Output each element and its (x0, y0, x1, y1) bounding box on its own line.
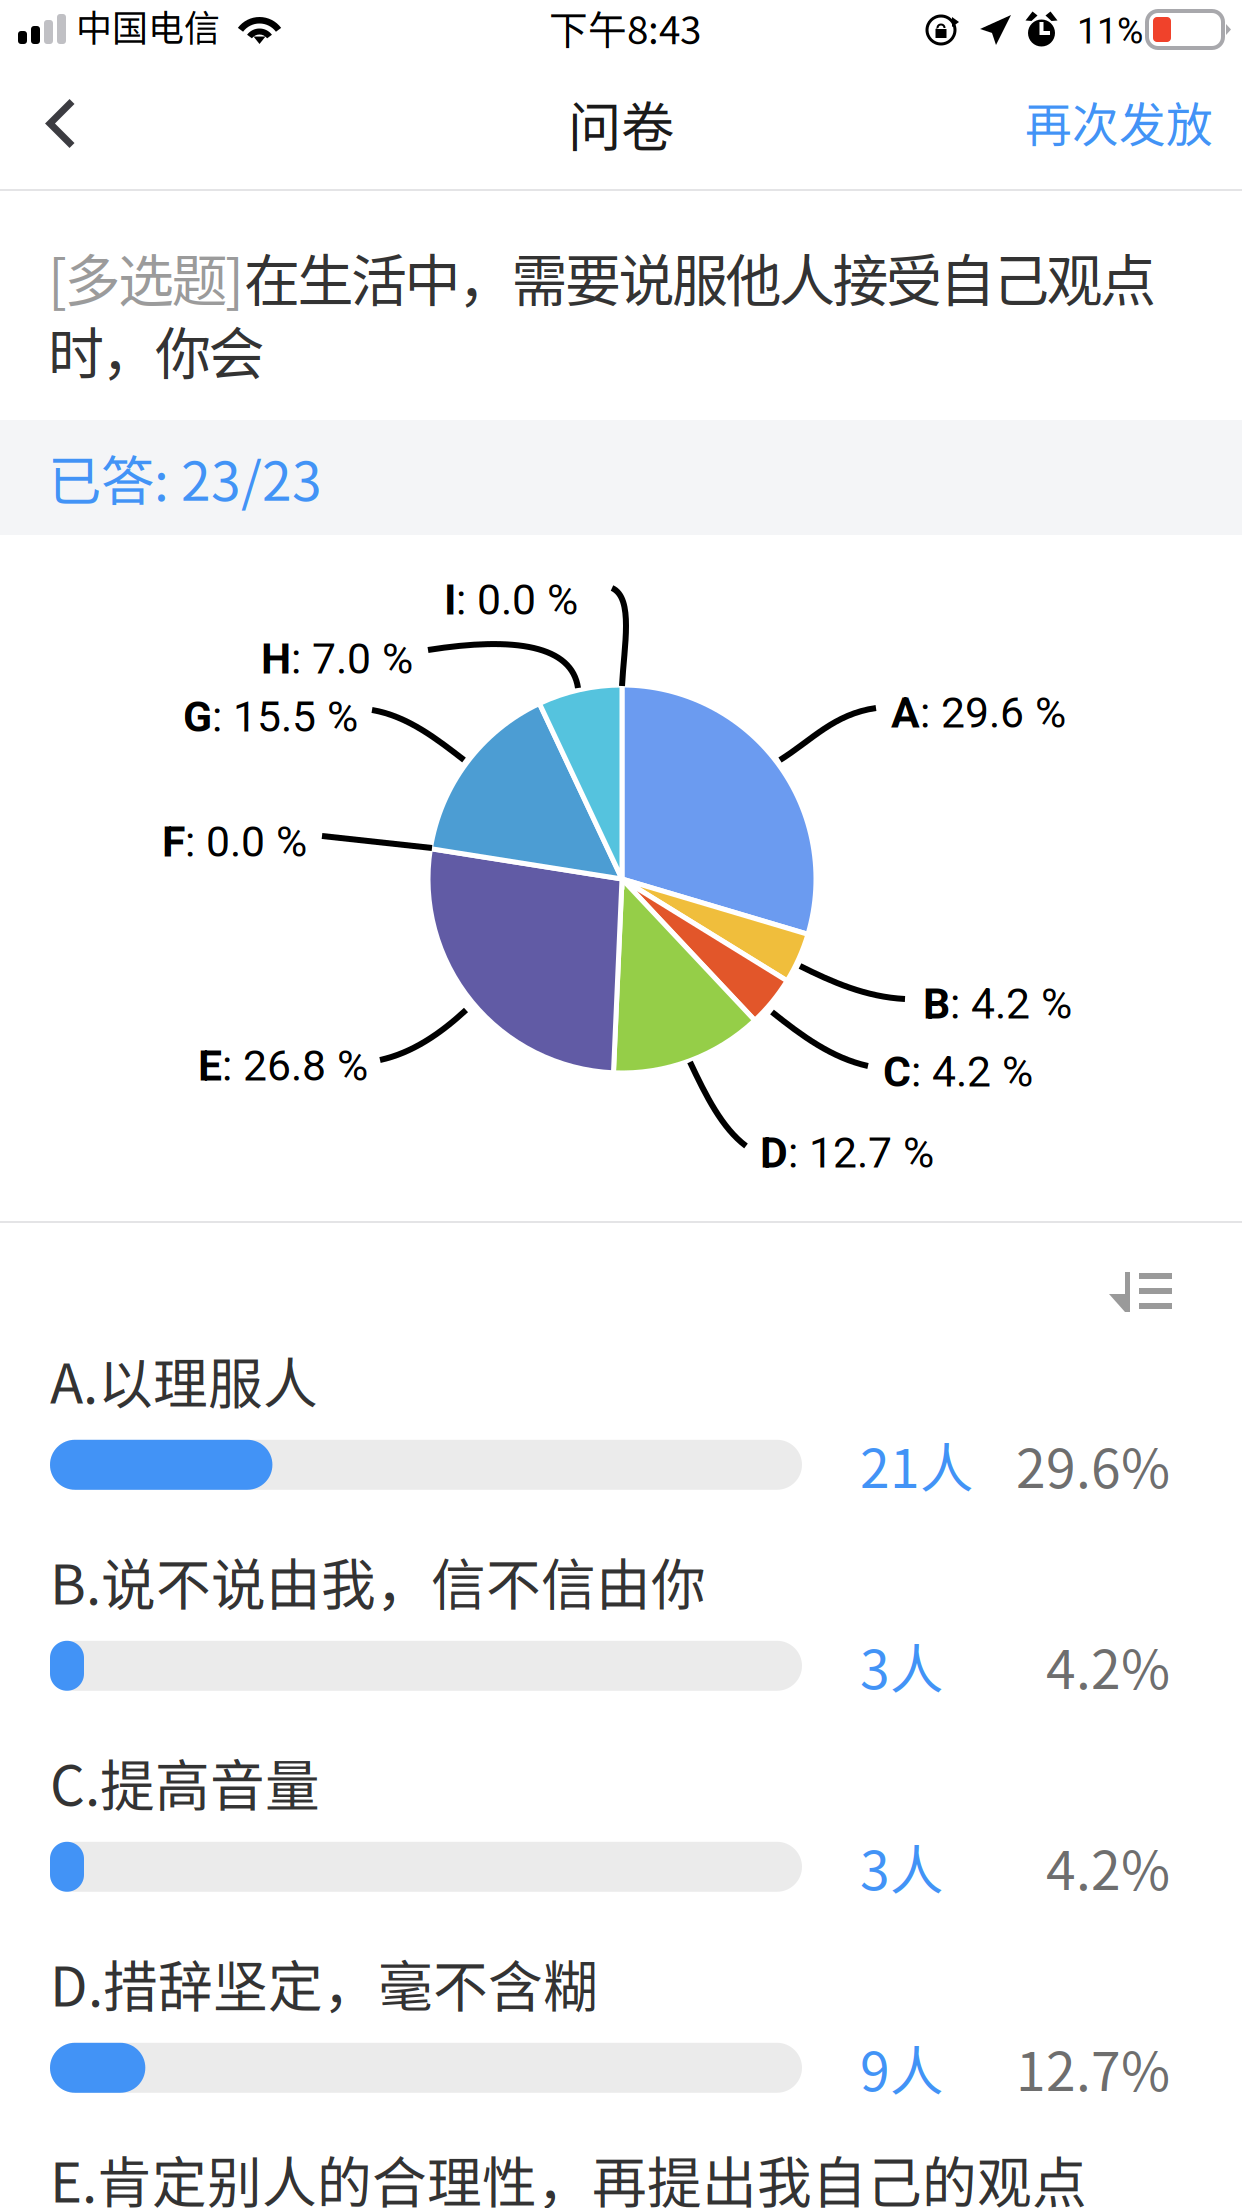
staticText: G (183, 692, 212, 742)
staticText: I (444, 575, 456, 625)
staticText: 已答: 23/23 (48, 439, 322, 516)
staticText: 在生活中，需要说服他人接受自己观点 (244, 236, 1156, 317)
staticText: [多选题] (48, 236, 244, 317)
staticText: : 12.7 % (788, 1128, 934, 1178)
staticText: E (198, 1041, 222, 1091)
button[interactable]: 再次发放 (1013, 62, 1225, 193)
staticText: D.措辞坚定，毫不含糊 (50, 1943, 598, 2022)
staticText: 时，你会 (48, 309, 264, 390)
staticText: C.提高音量 (50, 1742, 320, 1821)
staticText: F (162, 817, 185, 867)
staticText: 4.2% (1046, 1627, 1170, 1704)
staticText: : 7.0 % (291, 634, 413, 684)
staticText: 29.6% (1016, 1426, 1170, 1503)
staticText: : 0.0 % (185, 817, 307, 867)
staticText: A (891, 688, 920, 738)
staticText: : 4.2 % (950, 979, 1072, 1029)
staticText: 12.7% (1016, 2029, 1170, 2106)
staticText: B.说不说由我，信不信由你 (50, 1541, 706, 1620)
staticText: E.肯定别人的合理性，再提出我自己的观点 (50, 2139, 1087, 2208)
staticText: 中国电信 (76, 0, 220, 52)
staticText: D (760, 1128, 788, 1178)
staticText: A.以理服人 (50, 1340, 318, 1419)
staticText: H (261, 634, 291, 684)
staticText: : 26.8 % (222, 1041, 368, 1091)
staticText: 再次发放 (1025, 88, 1213, 155)
staticText: : 29.6 % (920, 688, 1066, 738)
staticText: 21人 (860, 1426, 973, 1503)
staticText: B (923, 979, 950, 1029)
staticText: 11% (1077, 10, 1143, 52)
staticText: : 4.2 % (911, 1047, 1033, 1097)
button[interactable]: Back (14, 66, 108, 189)
staticText: 3人 (860, 1627, 943, 1704)
staticText: 下午8:43 (549, 0, 701, 55)
staticText: 4.2% (1046, 1828, 1170, 1905)
button[interactable]: Sort (1089, 1256, 1192, 1328)
staticText: C (883, 1047, 911, 1097)
staticText: 9人 (860, 2029, 943, 2106)
staticText: : 0.0 % (456, 575, 578, 625)
staticText: 问卷 (568, 85, 674, 162)
staticText: : 15.5 % (212, 692, 358, 742)
staticText: 3人 (860, 1828, 943, 1905)
